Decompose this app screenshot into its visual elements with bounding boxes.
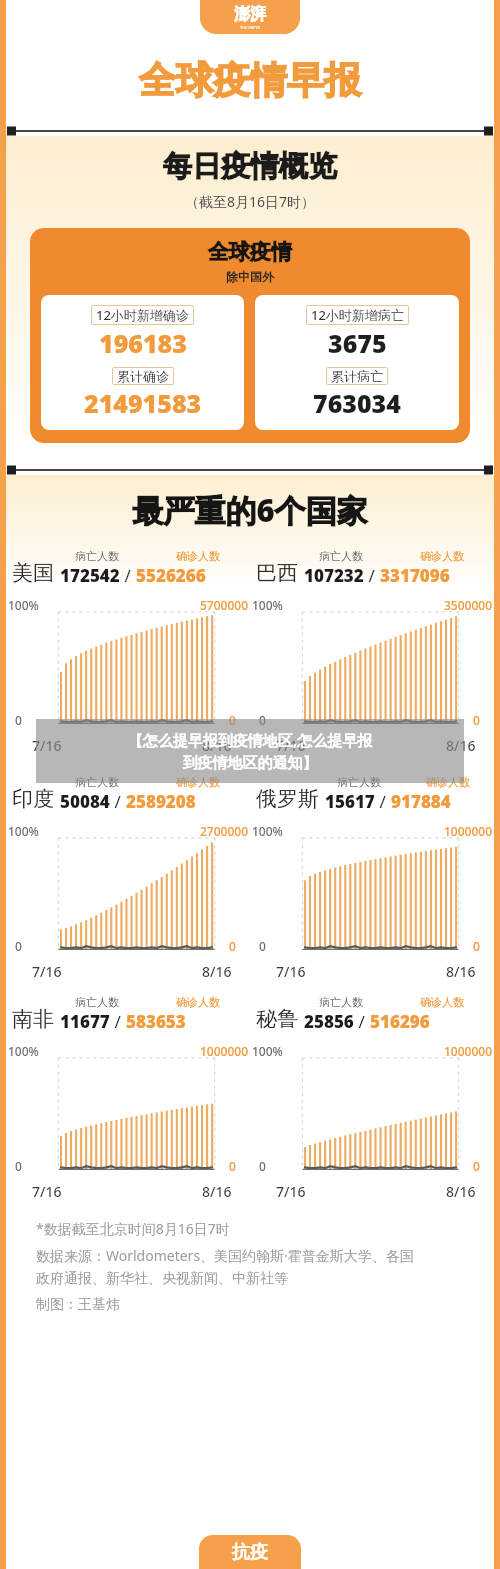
staticText: 确诊人数 [176,775,220,789]
staticText: 21491583 [84,386,202,420]
staticText: 病亡人数 [75,775,119,789]
staticText: THE PAPER [240,25,261,30]
button[interactable]: 南非 [6,995,250,1033]
staticText: 巴西 [256,560,298,586]
staticText: 7/16 [276,1182,306,1201]
staticText: 0 [15,1158,22,1174]
button[interactable]: 秘鲁 [250,995,494,1033]
staticText: / [354,1010,370,1033]
button[interactable]: 巴西 [250,549,494,587]
staticText: 澎湃 [234,4,266,24]
staticText: 8/16 [446,736,476,755]
staticText: / [364,564,380,587]
staticText: 100% [8,597,39,613]
staticText: 100% [8,823,39,839]
staticText: 0 [229,712,236,728]
staticText: / [110,790,126,813]
staticText: 0 [259,1158,266,1174]
staticText: 最严重的6个国家 [6,489,494,531]
staticText: 3500000 [444,597,493,613]
staticText: 1000000 [200,1043,249,1059]
staticText: 172542 [60,564,120,587]
staticText: 俄罗斯 [256,786,319,812]
staticText: 累计确诊 [117,368,169,384]
staticText: 583653 [126,1010,186,1033]
staticText: （截至8月16日7时） [185,192,316,211]
staticText: 8/16 [202,962,232,981]
staticText: 2589208 [126,790,196,813]
staticText: 累计病亡 [331,368,383,384]
staticText: 0 [229,1158,236,1174]
staticText: 2700000 [200,823,249,839]
button[interactable]: 美国 [6,549,250,587]
staticText: 763034 [313,386,401,420]
button[interactable]: 印度 [6,775,250,813]
staticText: 数据来源：Worldometers、美国约翰斯·霍普金斯大学、各国 政府通报、新… [36,1246,414,1288]
staticText: / [375,790,391,813]
staticText: 7/16 [32,1182,62,1201]
staticText: 1000000 [444,1043,493,1059]
staticText: 7/16 [276,962,306,981]
staticText: 0 [229,938,236,954]
staticText: 107232 [304,564,364,587]
staticText: 确诊人数 [420,549,464,563]
staticText: 制图：王基炜 [36,1296,120,1314]
staticText: 15617 [325,790,375,813]
staticText: 25856 [304,1010,354,1033]
staticText: 0 [15,938,22,954]
staticText: 5526266 [136,564,206,587]
staticText: 5700000 [200,597,249,613]
staticText: 196183 [99,326,187,360]
staticText: 每日疫情概览 [163,148,337,185]
staticText: 3317096 [380,564,450,587]
staticText: 3675 [328,326,387,360]
staticText: 【怎么提早报到疫情地区,怎么提早报 到疫情地区的通知】 [36,730,464,773]
staticText: 8/16 [446,962,476,981]
button[interactable]: 澎湃新闻 The Paper [200,0,300,34]
staticText: 50084 [60,790,110,813]
button[interactable]: 俄罗斯 [250,775,494,813]
staticText: 0 [473,712,480,728]
staticText: 确诊人数 [176,549,220,563]
staticText: 除中国外 [226,269,274,284]
staticText: 12小时新增确诊 [96,306,189,324]
staticText: 12小时新增病亡 [311,306,404,324]
staticText: 0 [473,938,480,954]
staticText: 0 [259,712,266,728]
staticText: 7/16 [276,736,306,755]
staticText: 南非 [12,1006,54,1032]
button[interactable]: 全球疫情 [30,228,470,443]
staticText: 516296 [370,1010,430,1033]
staticText: 100% [252,1043,283,1059]
staticText: 病亡人数 [75,549,119,563]
staticText: 秘鲁 [256,1006,298,1032]
staticText: 8/16 [202,1182,232,1201]
staticText: 1000000 [444,823,493,839]
staticText: 印度 [12,786,54,812]
staticText: 抗疫 [232,1541,268,1564]
staticText: 7/16 [32,962,62,981]
staticText: 病亡人数 [319,995,363,1009]
staticText: 0 [15,712,22,728]
staticText: / [120,564,136,587]
staticText: 100% [252,823,283,839]
button[interactable]: 12小时新增确诊 [41,295,244,430]
staticText: 确诊人数 [176,995,220,1009]
staticText: 确诊人数 [420,995,464,1009]
staticText: 8/16 [202,736,232,755]
staticText: 11677 [60,1010,110,1033]
staticText: 全球疫情 [208,239,292,265]
staticText: / [110,1010,126,1033]
staticText: 全球疫情早报 [139,57,361,104]
staticText: 100% [8,1043,39,1059]
button[interactable]: 12小时新增病亡 [255,295,459,430]
staticText: 病亡人数 [75,995,119,1009]
staticText: *数据截至北京时间8月16日7时 [36,1219,230,1238]
staticText: 0 [259,938,266,954]
staticText: 病亡人数 [337,775,381,789]
staticText: 917884 [391,790,451,813]
button[interactable]: 抗疫 [199,1535,301,1569]
staticText: 100% [252,597,283,613]
staticText: 确诊人数 [426,775,470,789]
staticText: 7/16 [32,736,62,755]
